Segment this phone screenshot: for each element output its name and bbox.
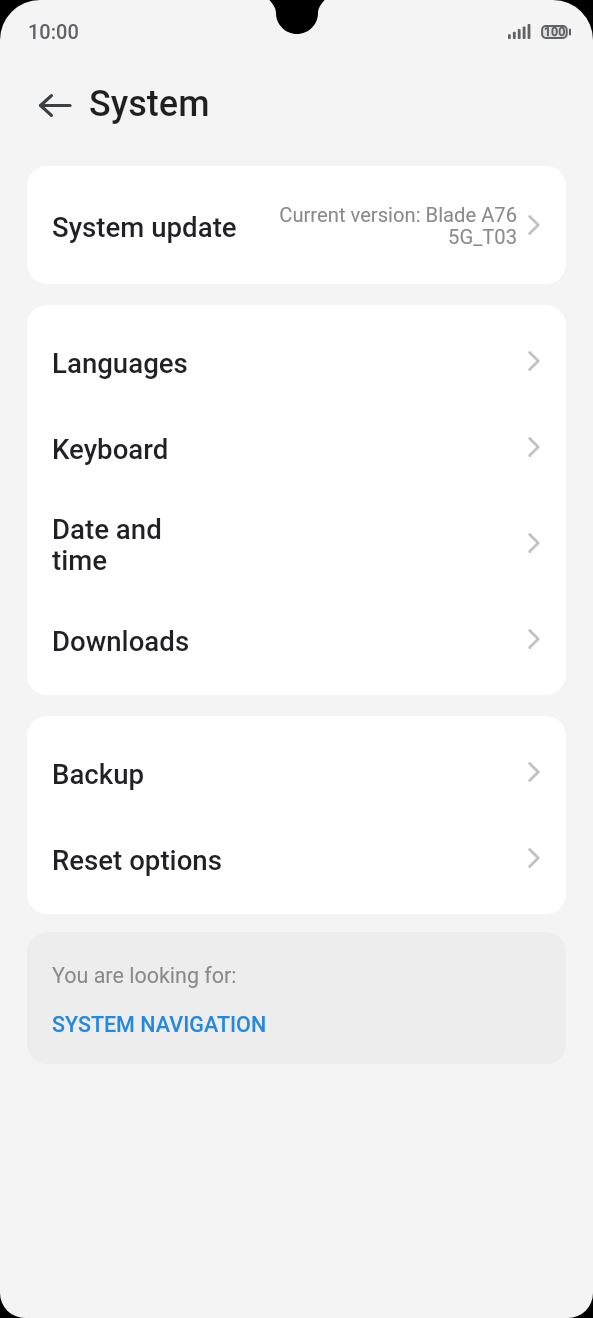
button[interactable]: Reset options (27, 815, 566, 901)
staticText: Current version: Blade A76 5G_T03 (271, 203, 517, 249)
button[interactable]: System update (27, 179, 566, 271)
staticText: System (89, 83, 210, 125)
staticText: Languages (52, 347, 188, 379)
staticText: Date and time (52, 513, 172, 577)
button[interactable]: Back (28, 79, 80, 131)
staticText: Reset options (52, 844, 222, 876)
button[interactable]: SYSTEM NAVIGATION (52, 1010, 267, 1035)
staticText: 100 (544, 24, 566, 39)
staticText: Keyboard (52, 433, 169, 465)
button[interactable]: Keyboard (27, 404, 566, 490)
staticText: You are looking for: (52, 963, 237, 988)
staticText: System update (52, 211, 237, 243)
button[interactable]: Backup (27, 729, 566, 815)
staticText: Downloads (52, 625, 190, 657)
button[interactable]: Languages (27, 318, 566, 404)
staticText: 10:00 (28, 20, 79, 43)
button[interactable]: Date and time (27, 490, 566, 596)
staticText: Backup (52, 758, 145, 790)
button[interactable]: Downloads (27, 596, 566, 682)
